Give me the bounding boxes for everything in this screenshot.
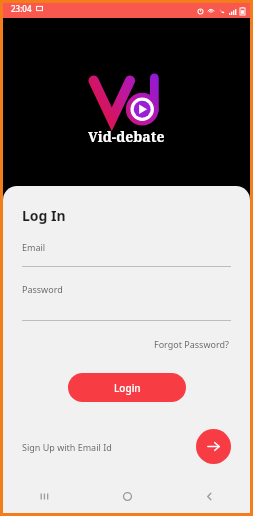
staticText: Login — [114, 381, 141, 395]
staticText: Vid-debate — [88, 127, 165, 146]
button[interactable]: Login — [68, 373, 186, 402]
staticText: Log In — [22, 206, 66, 225]
staticText: Password — [22, 283, 63, 295]
staticText: 23:04 — [11, 3, 32, 14]
staticText: Forgot Password? — [154, 338, 229, 350]
staticText: Sign Up with Email Id — [22, 441, 112, 453]
button[interactable]: Back — [168, 480, 250, 513]
button[interactable]: Home — [86, 480, 168, 513]
button[interactable]: Sign Up — [196, 429, 231, 464]
button[interactable]: Forgot Password? — [152, 336, 231, 352]
staticText: Email — [22, 241, 46, 253]
button[interactable]: Recents — [3, 480, 86, 513]
button[interactable]: Sign Up with Email Id — [22, 437, 112, 457]
